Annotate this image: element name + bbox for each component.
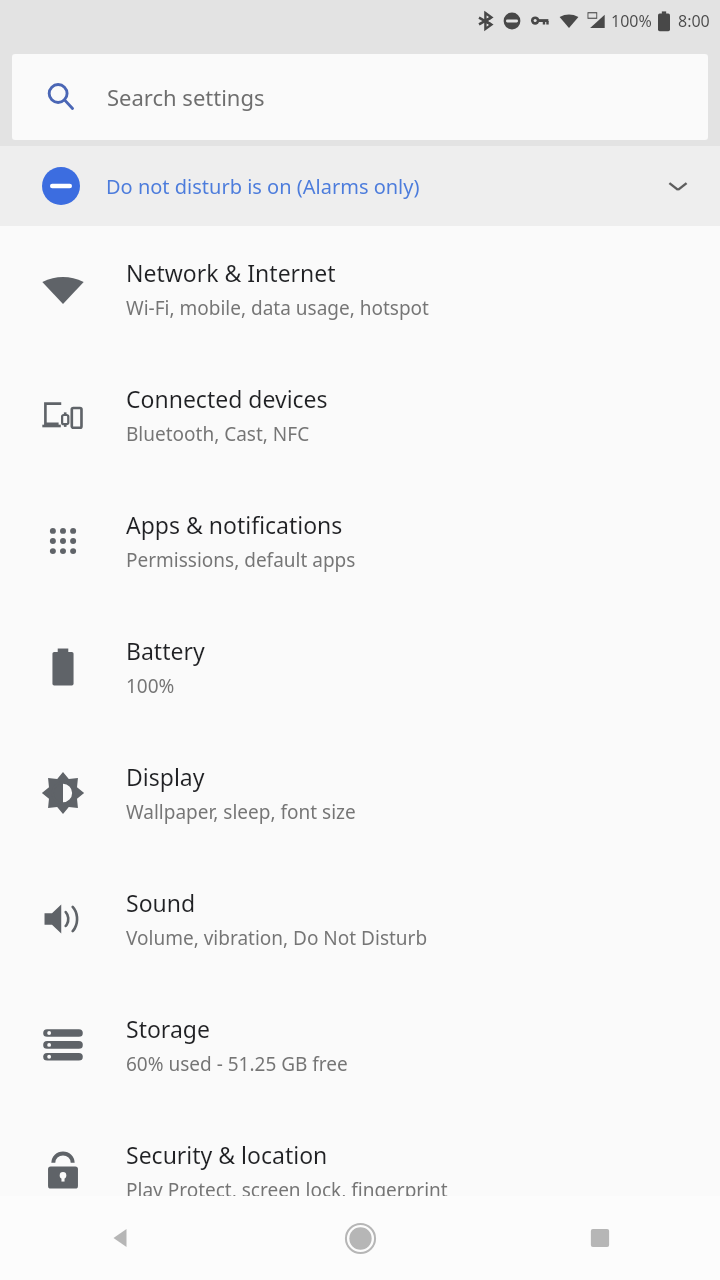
staticText: Connected devices: [126, 383, 328, 414]
button[interactable]: Search: [12, 54, 708, 140]
button[interactable]: Apps & notifications: [0, 478, 720, 604]
button[interactable]: Home: [240, 1196, 480, 1280]
staticText: Apps & notifications: [126, 509, 343, 540]
button[interactable]: Network & Internet: [0, 226, 720, 352]
staticText: Bluetooth, Cast, NFC: [126, 421, 310, 447]
staticText: 8:00: [678, 10, 710, 32]
staticText: Permissions, default apps: [126, 547, 356, 573]
staticText: Battery: [126, 635, 205, 666]
staticText: 100%: [611, 10, 652, 32]
button[interactable]: Battery: [0, 604, 720, 730]
staticText: Network & Internet: [126, 257, 336, 288]
staticText: Wi-Fi, mobile, data usage, hotspot: [126, 295, 429, 321]
other: Search: [45, 81, 77, 113]
button[interactable]: Expand: [650, 158, 706, 214]
staticText: Display: [126, 761, 205, 792]
staticText: Search settings: [107, 82, 265, 112]
button[interactable]: Display: [0, 730, 720, 856]
staticText: Security & location: [126, 1139, 328, 1170]
button[interactable]: Back: [0, 1196, 240, 1280]
staticText: Volume, vibration, Do Not Disturb: [126, 925, 428, 951]
button[interactable]: Connected devices: [0, 352, 720, 478]
staticText: Sound: [126, 887, 196, 918]
button[interactable]: Security & location: [0, 1108, 720, 1234]
staticText: Storage: [126, 1013, 210, 1044]
button[interactable]: Storage: [0, 982, 720, 1108]
staticText: Play Protect, screen lock, fingerprint: [126, 1177, 448, 1203]
button[interactable]: Do not disturb is on (Alarms only): [0, 146, 720, 226]
staticText: 100%: [126, 673, 175, 699]
staticText: Do not disturb is on (Alarms only): [106, 173, 420, 200]
staticText: 60% used - 51.25 GB free: [126, 1051, 348, 1077]
button[interactable]: Recent apps: [480, 1196, 720, 1280]
staticText: Wallpaper, sleep, font size: [126, 799, 356, 825]
button[interactable]: Sound: [0, 856, 720, 982]
